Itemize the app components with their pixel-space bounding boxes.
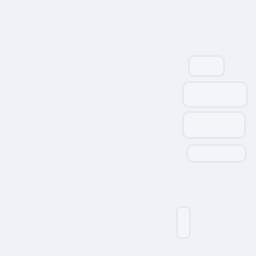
button[interactable]: Message bubble 2 [183, 82, 247, 107]
button[interactable]: Message bubble 3 [183, 112, 245, 138]
button[interactable]: Composer [177, 207, 190, 238]
button[interactable]: Message bubble 4 [187, 145, 246, 162]
button[interactable]: Message bubble 1 [189, 56, 224, 76]
